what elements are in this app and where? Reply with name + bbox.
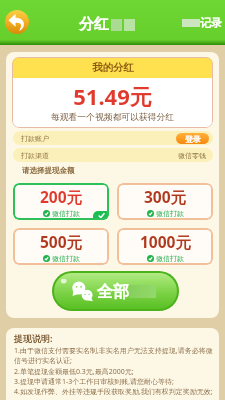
button[interactable]: Back [5,10,29,34]
button[interactable]: 打款账户 [13,131,213,145]
staticText: 微信打款 [156,254,184,263]
button[interactable]: 1000元 [117,228,213,265]
staticText: 500元 [40,231,83,252]
staticText: 信号进行实名认证; [14,356,72,366]
button[interactable]: 记录 [182,16,222,30]
staticText: 3.提现申请通常1-3个工作日审核到账,请您耐心等待; [14,377,174,387]
staticText: 每观看一个视频都可以获得分红 [12,112,213,123]
button[interactable]: 打款渠道 [13,148,213,162]
staticText: 提现说明: [14,332,53,344]
staticText: 微信打款 [156,209,184,218]
staticText: 200元 [40,186,83,207]
staticText: 4.如发现作弊、外挂等违规手段获取奖励,我们有权判定奖励无效; [14,387,213,397]
button[interactable]: 500元 [13,228,109,265]
staticText: 打款渠道 [21,151,49,160]
staticText: 记录 [200,16,222,30]
staticText: 请选择提现金额 [22,166,75,175]
staticText: 300元 [144,186,187,207]
button[interactable]: 300元 [117,183,213,220]
button[interactable]: 登录 [176,133,209,144]
staticText: 微信打款 [52,254,80,263]
staticText: 我的分红 [92,61,134,74]
staticText: 2.单笔提现金额最低0.3元,最高2000元; [14,367,134,377]
staticText: 1.由于微信支付需要实名制,非实名用户无法支持提现,请务必将微 [14,346,213,356]
staticText: 打款账户 [21,134,49,143]
staticText: 登录 [185,134,201,144]
staticText: 51.49元 [12,81,213,111]
staticText: 微信打款 [52,209,80,218]
staticText: 分红 [79,15,109,34]
staticText: 1000元 [140,231,191,252]
staticText: 全部 [97,282,129,302]
button[interactable]: 200元 [13,183,109,220]
button[interactable]: 全部 [54,273,177,309]
staticText: 微信零钱 [178,151,206,160]
